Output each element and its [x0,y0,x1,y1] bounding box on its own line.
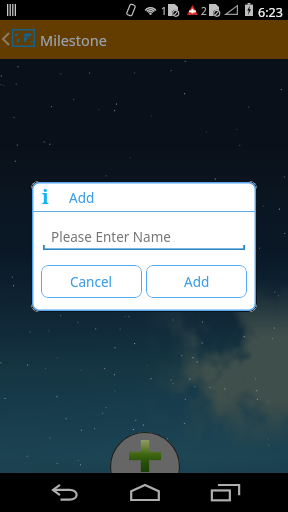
button[interactable]: Back [44,473,85,512]
staticText: Please Enter Name [51,228,171,246]
staticText: Cancel [70,273,113,291]
button[interactable]: Cancel [41,265,142,298]
button[interactable]: Home [124,473,165,512]
staticText: Milestone [40,30,107,50]
staticText: Add [69,189,95,207]
button[interactable]: Add milestone [110,432,180,502]
button[interactable]: Add [146,265,247,298]
staticText: 6:23 [258,4,283,21]
button[interactable]: Navigate up [0,20,11,58]
staticText: 1 [161,4,167,18]
staticText: Add [184,273,210,291]
staticText: 2 [201,4,207,18]
button[interactable]: Recent apps [205,473,246,512]
staticText: i [42,184,49,210]
